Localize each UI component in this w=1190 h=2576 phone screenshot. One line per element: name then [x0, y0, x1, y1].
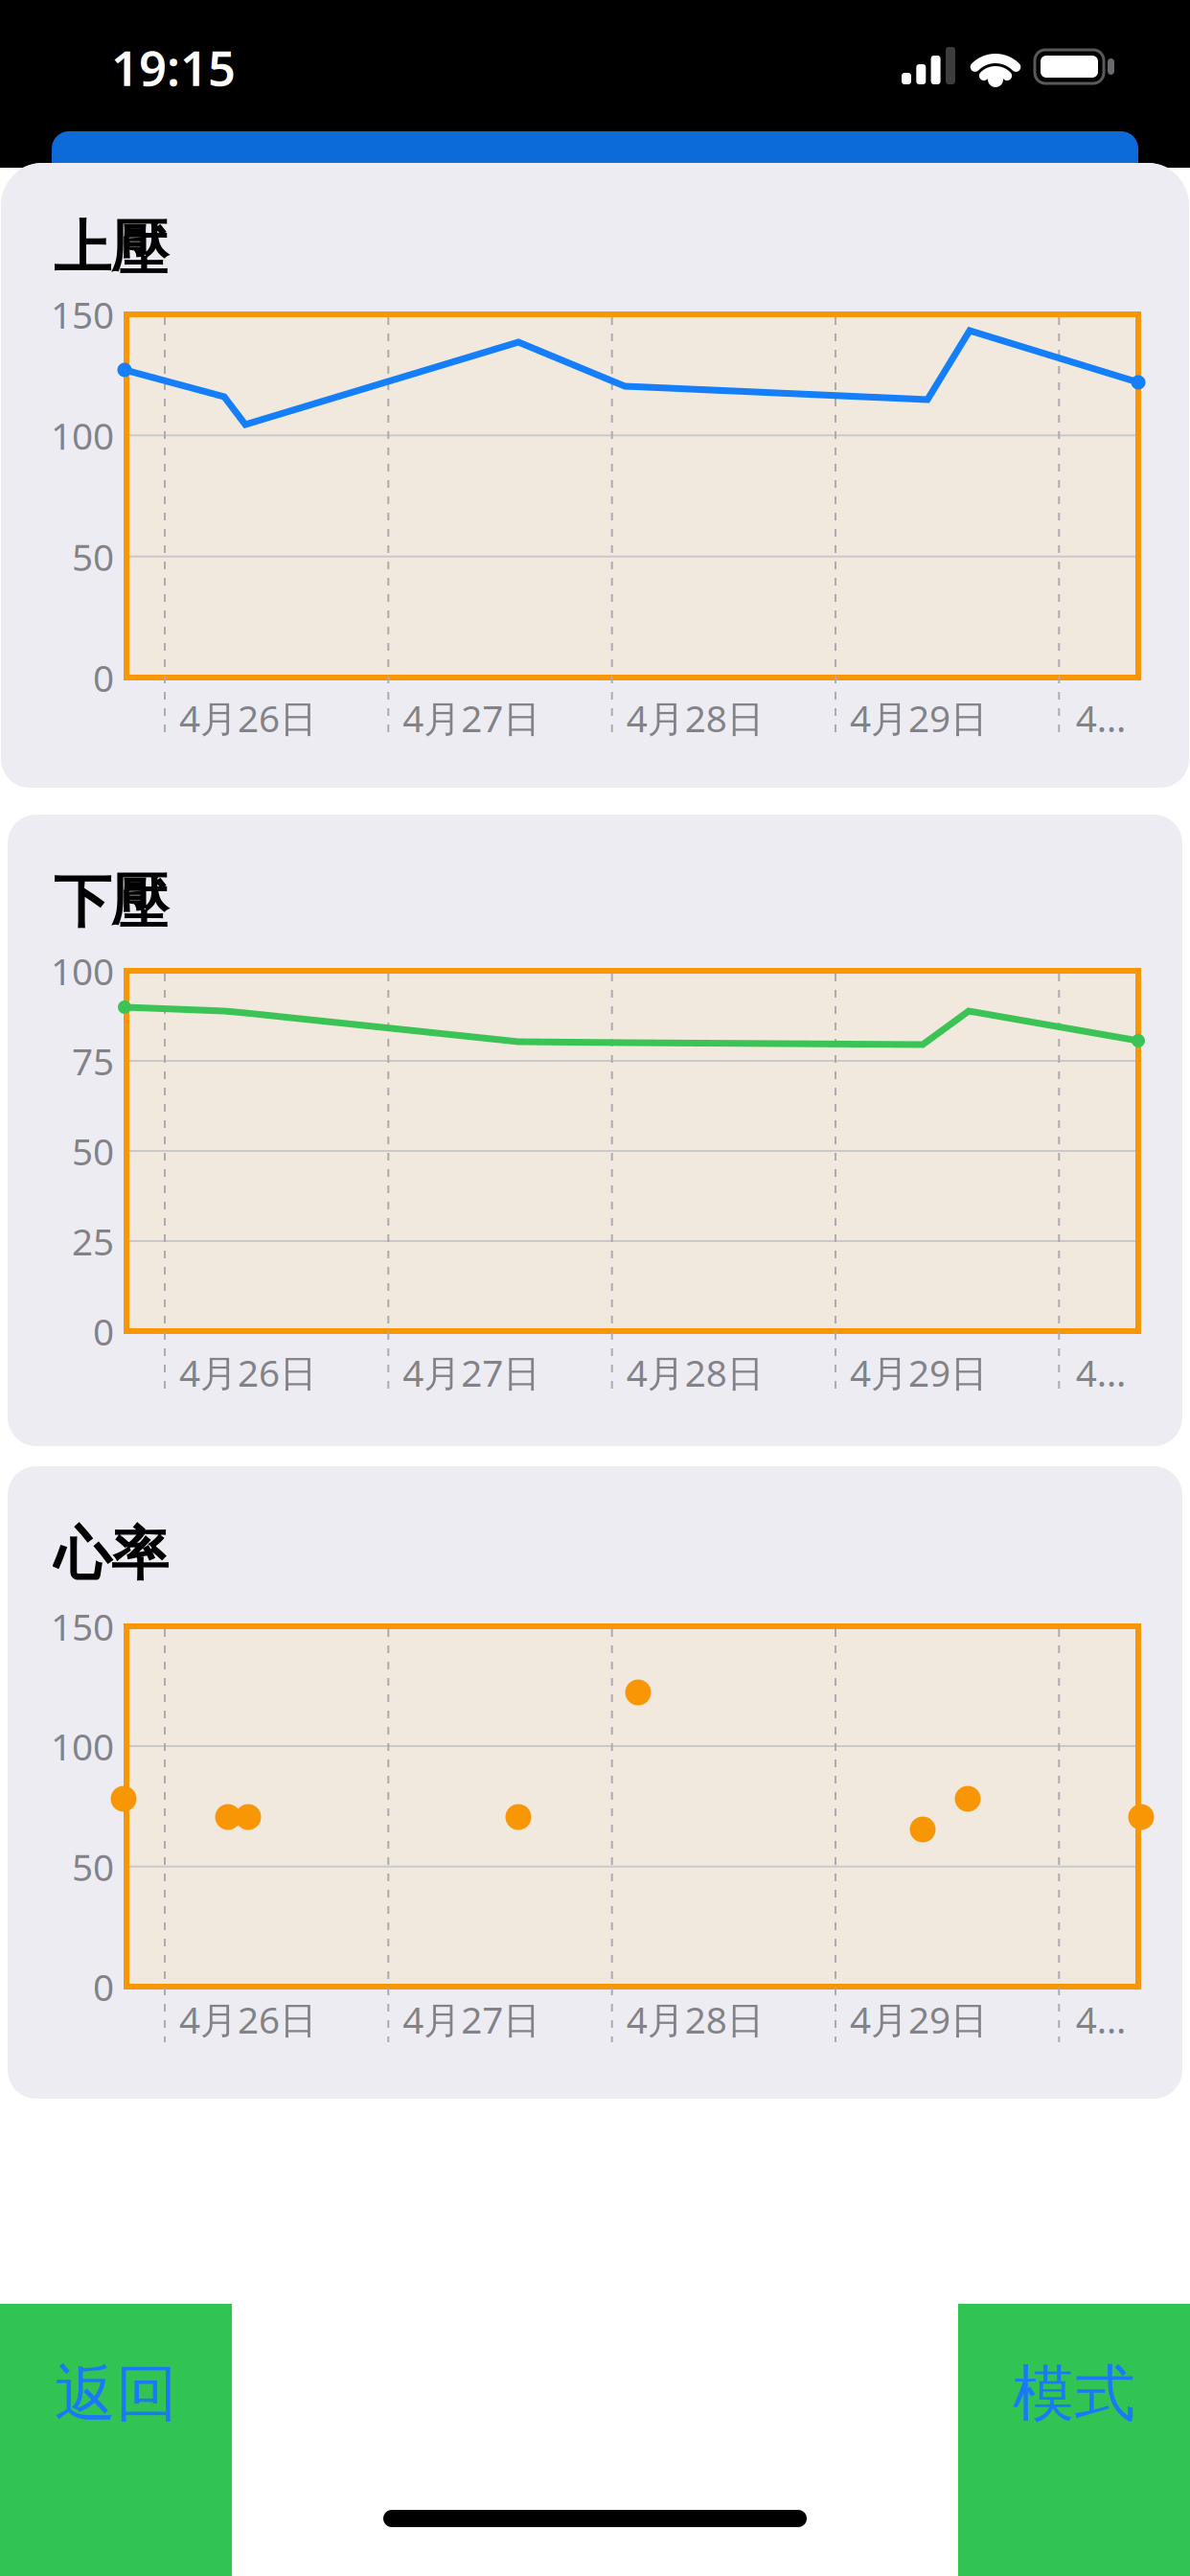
staticText: 100 [51, 411, 114, 460]
staticText: 0 [93, 1306, 114, 1356]
staticText: 150 [51, 1602, 114, 1651]
staticText: 150 [51, 290, 114, 339]
staticText: 50 [72, 1842, 114, 1891]
staticText: 4… [1076, 1995, 1127, 2044]
staticText: 模式 [1013, 2356, 1135, 2432]
staticText: 4月28日 [626, 1995, 764, 2044]
staticText: 返回 [55, 2356, 177, 2432]
staticText: 心率 [54, 1519, 169, 1590]
staticText: 75 [72, 1036, 114, 1085]
staticText: 4月29日 [850, 1348, 988, 1397]
staticText: 4月27日 [403, 1348, 541, 1397]
staticText: 4月27日 [403, 1995, 541, 2044]
staticText: 4… [1076, 1348, 1127, 1397]
staticText: 25 [72, 1216, 114, 1266]
staticText: 4月26日 [179, 1995, 317, 2044]
staticText: 0 [93, 653, 114, 702]
button[interactable]: 返回 [0, 2304, 232, 2576]
staticText: 下壓 [54, 867, 169, 937]
staticText: 上壓 [54, 213, 169, 284]
staticText: 4… [1076, 693, 1127, 742]
staticText: 4月29日 [850, 693, 988, 742]
staticText: 4月26日 [179, 1348, 317, 1397]
staticText: 4月29日 [850, 1995, 988, 2044]
staticText: 50 [72, 532, 114, 581]
staticText: 4月26日 [179, 693, 317, 742]
staticText: 100 [51, 946, 114, 995]
staticText: 19:15 [111, 35, 236, 99]
staticText: 100 [51, 1721, 114, 1771]
staticText: 4月28日 [626, 693, 764, 742]
staticText: 0 [93, 1962, 114, 2011]
staticText: 4月27日 [403, 693, 541, 742]
staticText: 50 [72, 1126, 114, 1175]
staticText: 4月28日 [626, 1348, 764, 1397]
button[interactable]: 模式 [958, 2304, 1190, 2576]
